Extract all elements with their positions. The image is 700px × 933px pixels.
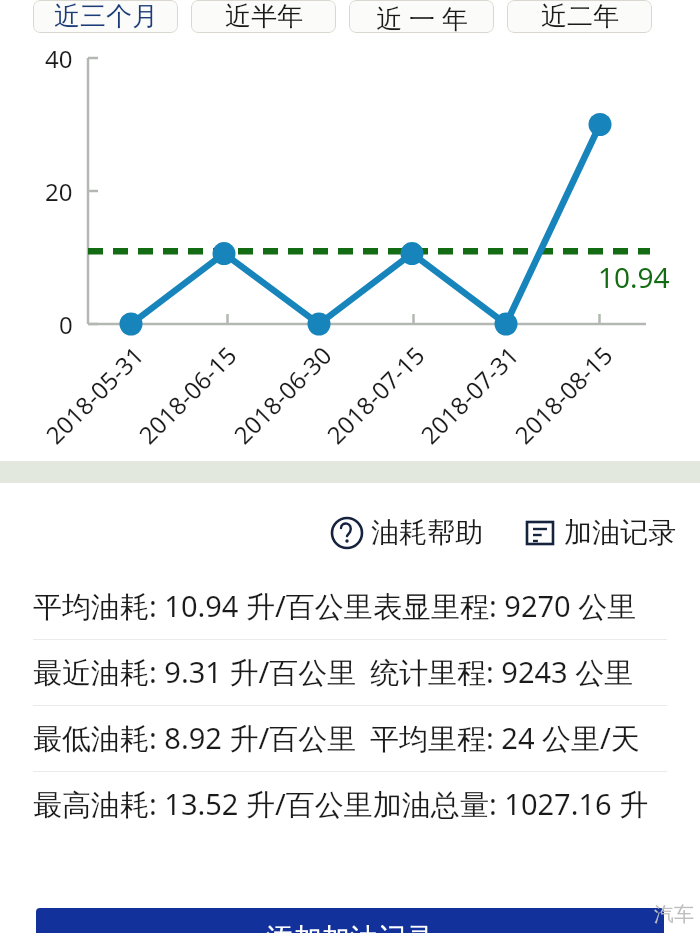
button[interactable]: Fuel consumption help bbox=[328, 513, 485, 552]
staticText: 表显里程: 9270 公里 bbox=[373, 586, 637, 626]
staticText: 近二年 bbox=[541, 0, 619, 33]
staticText: 汽车 bbox=[654, 902, 694, 927]
button[interactable]: 近三个月 bbox=[33, 0, 178, 33]
staticText: 最近油耗: 9.31 升/百公里 bbox=[33, 652, 357, 692]
button[interactable]: 添加加油记录 bbox=[36, 908, 664, 933]
button[interactable]: 近二年 bbox=[507, 0, 652, 33]
staticText: 平均油耗: 10.94 升/百公里 bbox=[33, 586, 373, 626]
staticText: 近半年 bbox=[225, 0, 303, 33]
staticText: 平均里程: 24 公里/天 bbox=[370, 718, 640, 758]
staticText: 近三个月 bbox=[54, 0, 158, 33]
button[interactable]: 近半年 bbox=[191, 0, 336, 33]
staticText: 加油记录 bbox=[564, 515, 676, 550]
staticText: 近 一 年 bbox=[376, 0, 468, 33]
staticText: 最低油耗: 8.92 升/百公里 bbox=[33, 718, 357, 758]
staticText: 油耗帮助 bbox=[371, 515, 483, 550]
other: Fuel consumption help bbox=[330, 516, 364, 550]
other: Refuel records bbox=[525, 518, 555, 548]
staticText: 加油总量: 1027.16 升 bbox=[373, 784, 649, 824]
staticText: 添加加油记录 bbox=[266, 921, 434, 933]
staticText: 统计里程: 9243 公里 bbox=[370, 652, 634, 692]
staticText: 最高油耗: 13.52 升/百公里 bbox=[33, 784, 373, 824]
button[interactable]: 近 一 年 bbox=[349, 0, 494, 33]
button[interactable]: Refuel records bbox=[523, 513, 678, 552]
